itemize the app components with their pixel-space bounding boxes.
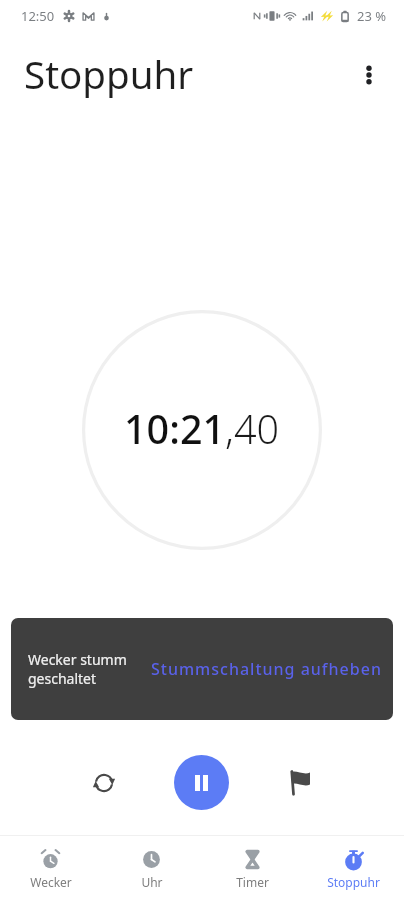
button[interactable]: Pause xyxy=(174,755,229,810)
button[interactable]: Wecker xyxy=(0,836,101,900)
button[interactable]: Timer xyxy=(202,836,303,900)
staticText: Stoppuhr xyxy=(327,874,380,890)
button[interactable]: More options xyxy=(346,52,392,98)
staticText: 23 % xyxy=(357,7,387,25)
staticText: 12:50 xyxy=(21,7,55,25)
staticText: Uhr xyxy=(141,874,163,890)
button[interactable]: Uhr xyxy=(101,836,202,900)
staticText: Stummschaltung aufheben xyxy=(151,658,382,680)
staticText: Wecker stumm geschaltet xyxy=(28,650,127,688)
button[interactable]: Stummschaltung aufheben xyxy=(142,648,391,690)
staticText: Wecker xyxy=(30,874,72,890)
button[interactable]: Lap xyxy=(273,755,328,810)
staticText: Stoppuhr xyxy=(24,48,194,100)
staticText: 10:21,40 xyxy=(124,402,280,456)
staticText: Timer xyxy=(236,874,269,890)
button[interactable]: Reset xyxy=(76,755,131,810)
button[interactable]: Stoppuhr xyxy=(303,836,404,900)
